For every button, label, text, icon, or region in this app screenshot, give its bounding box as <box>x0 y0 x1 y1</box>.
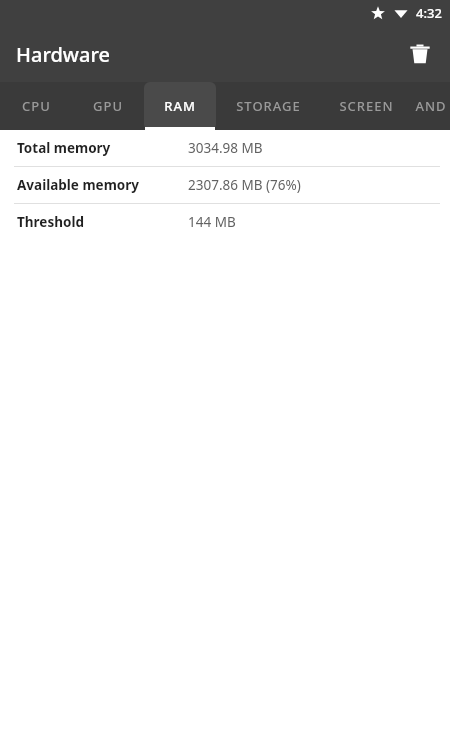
staticText: Available memory <box>17 176 139 194</box>
button[interactable]: ANDROID <box>412 82 450 130</box>
button[interactable]: SCREEN <box>320 82 412 130</box>
staticText: 3034.98 MB <box>188 139 263 157</box>
button[interactable]: RAM <box>144 82 216 130</box>
button[interactable]: Threshold <box>0 204 450 240</box>
button[interactable]: Available memory <box>0 167 450 203</box>
staticText: 4:32 <box>416 4 442 22</box>
staticText: Threshold <box>17 213 84 231</box>
staticText: RAM <box>164 97 196 115</box>
staticText: SCREEN <box>339 97 394 115</box>
staticText: Hardware <box>16 41 110 68</box>
staticText: CPU <box>22 97 51 115</box>
button[interactable]: Delete <box>398 32 442 76</box>
button[interactable]: CPU <box>0 82 72 130</box>
button[interactable]: Total memory <box>0 130 450 166</box>
button[interactable]: GPU <box>72 82 144 130</box>
staticText: STORAGE <box>236 97 301 115</box>
staticText: 2307.86 MB (76%) <box>188 176 301 194</box>
staticText: GPU <box>93 97 123 115</box>
button[interactable]: STORAGE <box>216 82 320 130</box>
staticText: 144 MB <box>188 213 236 231</box>
staticText: Total memory <box>17 139 111 157</box>
staticText: ANDROID <box>412 97 450 115</box>
